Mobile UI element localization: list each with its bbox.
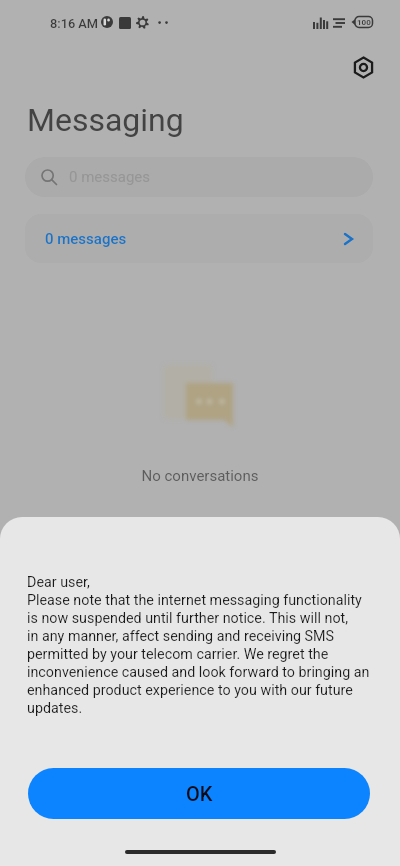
- staticText: 100: [357, 18, 371, 27]
- button[interactable]: Settings: [346, 50, 380, 84]
- staticText: 0 messages: [69, 168, 151, 186]
- staticText: 8:16 AM: [50, 16, 99, 31]
- staticText: No conversations: [0, 467, 400, 485]
- button[interactable]: OK: [28, 768, 370, 819]
- button[interactable]: 0 messages: [25, 214, 373, 263]
- staticText: OK: [186, 782, 213, 805]
- staticText: Dear user, Please note that the internet…: [27, 574, 400, 717]
- button[interactable]: 0 messages: [25, 157, 373, 197]
- staticText: Messaging: [27, 101, 184, 139]
- staticText: 0 messages: [45, 230, 127, 248]
